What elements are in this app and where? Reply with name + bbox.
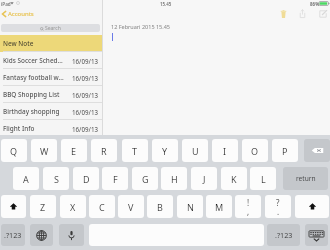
staticText: Kids Soccer Sched... bbox=[3, 56, 63, 65]
button[interactable]: .?123 bbox=[1, 224, 25, 246]
button[interactable]: C bbox=[89, 195, 115, 218]
staticText: G bbox=[142, 173, 149, 185]
staticText: .?123 bbox=[275, 230, 293, 240]
staticText: 16/09/13 bbox=[72, 125, 98, 133]
button[interactable]: O bbox=[242, 139, 268, 162]
staticText: Search bbox=[45, 25, 61, 32]
button[interactable]: A bbox=[13, 167, 39, 190]
staticText: W bbox=[40, 145, 49, 157]
button[interactable]: Share bbox=[296, 7, 309, 20]
staticText: , bbox=[247, 206, 250, 217]
button[interactable]: B bbox=[147, 195, 173, 218]
staticText: BBQ Shopping List bbox=[3, 90, 60, 99]
staticText: 16/09/13 bbox=[72, 108, 98, 116]
button[interactable]: Delete bbox=[277, 7, 290, 20]
staticText: A bbox=[23, 173, 29, 185]
staticText: 16/09/13 bbox=[72, 57, 98, 65]
staticText: 12 Februari 2015 15.45 bbox=[111, 23, 171, 30]
staticText: 16/09/13 bbox=[72, 74, 98, 82]
button[interactable]: L bbox=[250, 167, 276, 190]
staticText: T bbox=[132, 145, 138, 157]
staticText: .?123 bbox=[4, 230, 22, 240]
button[interactable]: J bbox=[191, 167, 217, 190]
staticText: R bbox=[101, 145, 107, 157]
button[interactable]: W bbox=[31, 139, 57, 162]
staticText: ! bbox=[247, 197, 250, 208]
staticText: Y bbox=[162, 145, 168, 157]
staticText: B bbox=[157, 201, 163, 213]
button[interactable]: P bbox=[272, 139, 298, 162]
button[interactable]: R bbox=[91, 139, 117, 162]
staticText: iPad bbox=[1, 1, 11, 7]
button[interactable]: Fantasy football w... bbox=[0, 69, 102, 86]
button[interactable]: E bbox=[61, 139, 87, 162]
staticText: V bbox=[128, 201, 134, 213]
button[interactable]: Search bbox=[1, 24, 100, 32]
staticText: P bbox=[282, 145, 288, 157]
staticText: K bbox=[231, 173, 237, 185]
button[interactable]: ! bbox=[235, 195, 261, 218]
staticText: New Note bbox=[3, 39, 34, 48]
button[interactable]: Dictation bbox=[59, 224, 84, 246]
staticText: O bbox=[251, 145, 259, 157]
staticText: S bbox=[54, 173, 59, 185]
staticText: X bbox=[70, 201, 76, 213]
staticText: U bbox=[192, 145, 199, 157]
button[interactable]: Hide keyboard bbox=[305, 224, 328, 246]
button[interactable]: K bbox=[221, 167, 247, 190]
staticText: C bbox=[99, 201, 105, 213]
staticText: 86% bbox=[310, 1, 320, 7]
staticText: F bbox=[113, 173, 118, 185]
staticText: 15.45 bbox=[160, 1, 172, 7]
button[interactable]: Accounts bbox=[1, 8, 37, 19]
staticText: Z bbox=[40, 201, 46, 213]
staticText: ? bbox=[276, 197, 280, 208]
button[interactable]: X bbox=[60, 195, 86, 218]
button[interactable]: S bbox=[43, 167, 69, 190]
button[interactable]: N bbox=[177, 195, 203, 218]
staticText: N bbox=[187, 201, 194, 213]
button[interactable]: D bbox=[73, 167, 99, 190]
staticText: H bbox=[171, 173, 178, 185]
button[interactable]: T bbox=[122, 139, 148, 162]
staticText: Fantasy football w... bbox=[3, 73, 64, 82]
button[interactable]: BBQ Shopping List bbox=[0, 86, 102, 103]
staticText: Birthday shopping bbox=[3, 107, 60, 116]
button[interactable]: New Note bbox=[0, 35, 102, 52]
button[interactable]: M bbox=[206, 195, 232, 218]
staticText: D bbox=[83, 173, 90, 185]
staticText: Accounts bbox=[8, 10, 34, 18]
staticText: L bbox=[261, 173, 266, 185]
button[interactable]: return bbox=[283, 167, 328, 190]
staticText: Q bbox=[10, 145, 18, 157]
staticText: return bbox=[296, 174, 316, 183]
staticText: J bbox=[203, 173, 206, 185]
button[interactable]: F bbox=[102, 167, 128, 190]
button[interactable]: G bbox=[132, 167, 158, 190]
button[interactable]: Z bbox=[30, 195, 56, 218]
button[interactable]: ? bbox=[265, 195, 291, 218]
button[interactable]: Shift bbox=[295, 195, 329, 218]
staticText: Flight Info bbox=[3, 124, 35, 133]
staticText: E bbox=[71, 145, 77, 157]
button[interactable]: Q bbox=[1, 139, 27, 162]
button[interactable]: Y bbox=[152, 139, 178, 162]
button[interactable]: Next keyboard bbox=[30, 224, 53, 246]
button[interactable]: I bbox=[212, 139, 238, 162]
button[interactable]: V bbox=[118, 195, 144, 218]
staticText: . bbox=[277, 206, 280, 217]
button[interactable]: Shift bbox=[1, 195, 26, 218]
staticText: I bbox=[223, 145, 227, 157]
button[interactable]: Kids Soccer Sched... bbox=[0, 52, 102, 69]
button[interactable]: H bbox=[161, 167, 187, 190]
staticText: 16/09/13 bbox=[72, 91, 98, 99]
button[interactable]: Flight Info bbox=[0, 120, 102, 137]
button[interactable]: .?123 bbox=[267, 224, 300, 246]
button[interactable]: New note bbox=[316, 7, 329, 20]
button[interactable]: Birthday shopping bbox=[0, 103, 102, 120]
button[interactable]: U bbox=[182, 139, 208, 162]
button[interactable]: Backspace bbox=[304, 139, 330, 162]
staticText: M bbox=[215, 201, 224, 213]
